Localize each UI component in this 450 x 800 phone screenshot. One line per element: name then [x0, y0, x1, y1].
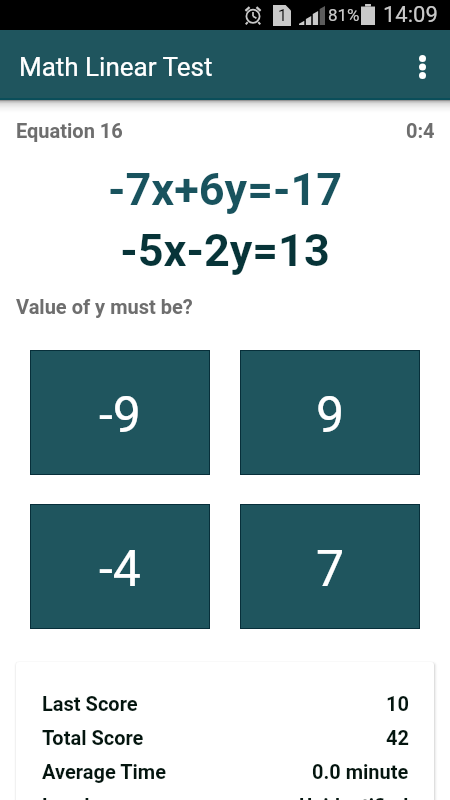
- staticText: 9: [316, 386, 345, 445]
- staticText: Equation 16: [16, 119, 123, 142]
- staticText: Level: [42, 794, 90, 800]
- staticText: 81%: [328, 5, 360, 25]
- staticText: Total Score: [42, 726, 144, 749]
- staticText: Value of y must be?: [16, 295, 193, 318]
- staticText: Unidentified: [299, 794, 409, 800]
- staticText: 42: [386, 726, 409, 749]
- staticText: 0.0 minute: [312, 760, 409, 783]
- staticText: -7x+6y=-17: [0, 163, 450, 216]
- button[interactable]: 7: [240, 504, 420, 629]
- staticText: 1: [278, 6, 287, 25]
- button[interactable]: -9: [30, 350, 210, 475]
- staticText: -4: [99, 540, 141, 599]
- staticText: Average Time: [42, 760, 166, 783]
- staticText: Math Linear Test: [19, 52, 213, 82]
- button[interactable]: 9: [240, 350, 420, 475]
- button[interactable]: -4: [30, 504, 210, 629]
- button[interactable]: More options: [398, 41, 446, 89]
- staticText: Last Score: [42, 692, 138, 715]
- staticText: -9: [99, 386, 141, 445]
- staticText: 14:09: [383, 2, 438, 28]
- staticText: 10: [386, 692, 409, 715]
- staticText: 0:4: [406, 119, 435, 142]
- staticText: -5x-2y=13: [0, 224, 450, 277]
- staticText: 7: [316, 540, 345, 599]
